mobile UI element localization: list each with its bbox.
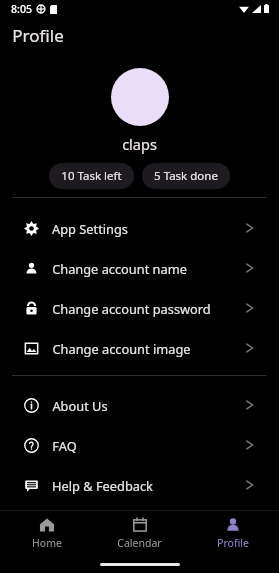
button[interactable]: Profile photo: [111, 68, 169, 126]
button[interactable]: Profile: [186, 514, 279, 553]
staticText: 8:05: [11, 2, 32, 16]
staticText: Home: [32, 536, 62, 550]
button[interactable]: Change account password: [0, 288, 279, 328]
staticText: 5 Task done: [154, 168, 218, 184]
staticText: Profile: [217, 536, 249, 550]
button[interactable]: App Settings: [0, 208, 279, 248]
staticText: Profile: [12, 24, 64, 47]
button[interactable]: 10 Task left: [49, 163, 134, 189]
button[interactable]: Calendar: [93, 514, 186, 553]
button[interactable]: Change account name: [0, 248, 279, 288]
staticText: Change account image: [52, 340, 191, 357]
button[interactable]: FAQ: [0, 425, 279, 465]
button[interactable]: Home: [0, 514, 93, 553]
staticText: About Us: [52, 397, 108, 414]
button[interactable]: Change account image: [0, 328, 279, 368]
button[interactable]: About Us: [0, 385, 279, 425]
staticText: App Settings: [52, 220, 128, 237]
staticText: Change account password: [52, 300, 211, 317]
staticText: FAQ: [52, 437, 77, 454]
staticText: Help & Feedback: [52, 477, 153, 494]
staticText: Change account name: [52, 260, 187, 277]
staticText: 10 Task left: [61, 168, 122, 184]
button[interactable]: Help & Feedback: [0, 465, 279, 505]
staticText: Calendar: [117, 536, 162, 550]
button[interactable]: 5 Task done: [142, 163, 230, 189]
staticText: claps: [122, 134, 157, 154]
